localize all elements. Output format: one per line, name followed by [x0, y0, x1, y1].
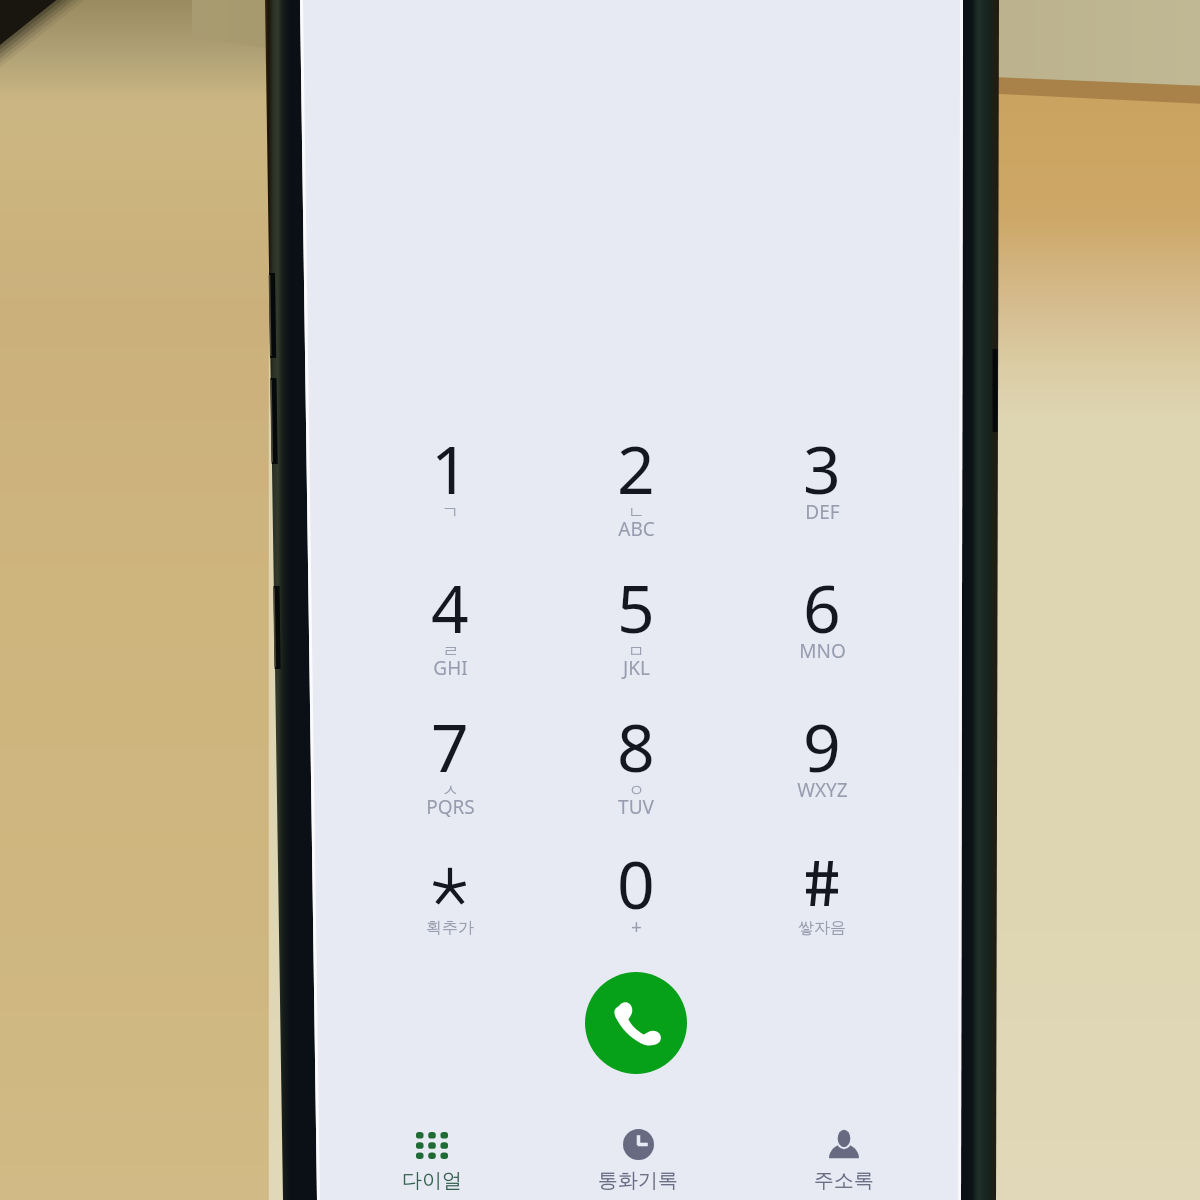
button[interactable] [744, 1110, 944, 1200]
button[interactable] [332, 1110, 532, 1200]
staticText: 6 [803, 562, 841, 652]
button[interactable]: Call [585, 972, 687, 1074]
button[interactable] [730, 408, 914, 540]
button[interactable] [730, 686, 914, 818]
staticText: ㄱ [442, 502, 459, 523]
staticText: 3 [803, 423, 841, 513]
staticText: ABC [618, 516, 655, 542]
staticText: PQRS [426, 794, 475, 820]
staticText: 통화기록 [598, 1168, 678, 1193]
staticText: ㄹ [442, 641, 459, 662]
staticText: 주소록 [814, 1168, 874, 1193]
staticText: 쌓자음 [798, 918, 846, 938]
button[interactable] [358, 823, 542, 955]
staticText: 9 [803, 701, 841, 791]
button[interactable] [544, 686, 728, 818]
button[interactable] [730, 547, 914, 679]
button[interactable] [358, 547, 542, 679]
staticText: GHI [433, 655, 468, 681]
staticText: 2 [617, 423, 655, 513]
staticText: 다이얼 [402, 1168, 462, 1193]
staticText: 5 [617, 562, 655, 652]
button[interactable] [544, 823, 728, 955]
staticText: ㅇ [628, 780, 645, 801]
staticText: TUV [618, 794, 654, 820]
button[interactable] [544, 547, 728, 679]
staticText: + [631, 914, 642, 940]
staticText: WXYZ [797, 777, 848, 803]
staticText: MNO [799, 638, 846, 664]
staticText: ㄴ [628, 502, 645, 523]
button[interactable] [730, 823, 914, 955]
staticText: DEF [805, 499, 840, 525]
staticText: 7 [431, 701, 469, 791]
staticText: 8 [617, 701, 655, 791]
button[interactable] [538, 1110, 738, 1200]
button[interactable] [358, 686, 542, 818]
button[interactable] [358, 408, 542, 540]
staticText: 획추가 [426, 918, 474, 938]
staticText: 0 [617, 838, 655, 928]
staticText: ㅅ [442, 780, 459, 801]
staticText: ㅁ [628, 641, 645, 662]
button[interactable] [544, 408, 728, 540]
staticText: JKL [623, 655, 650, 681]
staticText: 4 [431, 562, 469, 652]
staticText: 1 [431, 423, 469, 513]
